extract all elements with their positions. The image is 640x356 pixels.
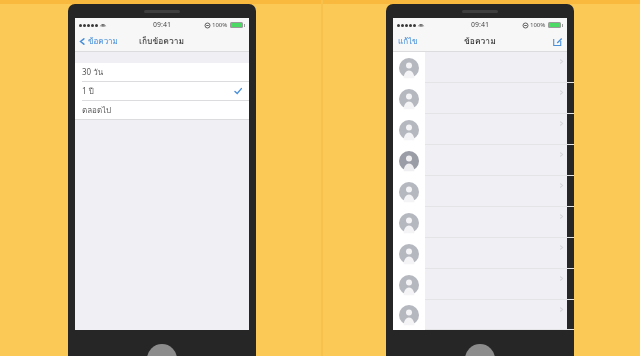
button[interactable]: ข้อความ (75, 32, 124, 51)
button[interactable] (393, 145, 567, 176)
staticText: 09:41 (471, 20, 489, 30)
staticText: 1 ปี (82, 85, 94, 98)
button[interactable] (393, 176, 567, 207)
button[interactable] (393, 300, 567, 330)
button[interactable] (393, 238, 567, 269)
staticText: ตลอดไป (82, 104, 112, 117)
button[interactable]: แก้ไข (393, 32, 424, 51)
staticText: เก็บข้อความ (139, 34, 185, 48)
staticText: 09:41 (153, 20, 171, 30)
staticText: 100% (212, 21, 228, 29)
button[interactable] (393, 52, 567, 83)
staticText: ข้อความ (88, 35, 118, 48)
button[interactable] (393, 83, 567, 114)
button[interactable] (393, 269, 567, 300)
button[interactable]: 30 วัน (75, 63, 249, 81)
button[interactable]: ตลอดไป (75, 101, 249, 119)
staticText: ข้อความ (464, 34, 496, 48)
staticText: 30 วัน (82, 66, 104, 79)
staticText: 100% (530, 21, 546, 29)
button[interactable] (393, 207, 567, 238)
staticText: แก้ไข (398, 35, 418, 48)
button[interactable]: 1 ปี (75, 82, 249, 100)
button[interactable]: Compose new message (548, 34, 567, 49)
button[interactable] (393, 114, 567, 145)
